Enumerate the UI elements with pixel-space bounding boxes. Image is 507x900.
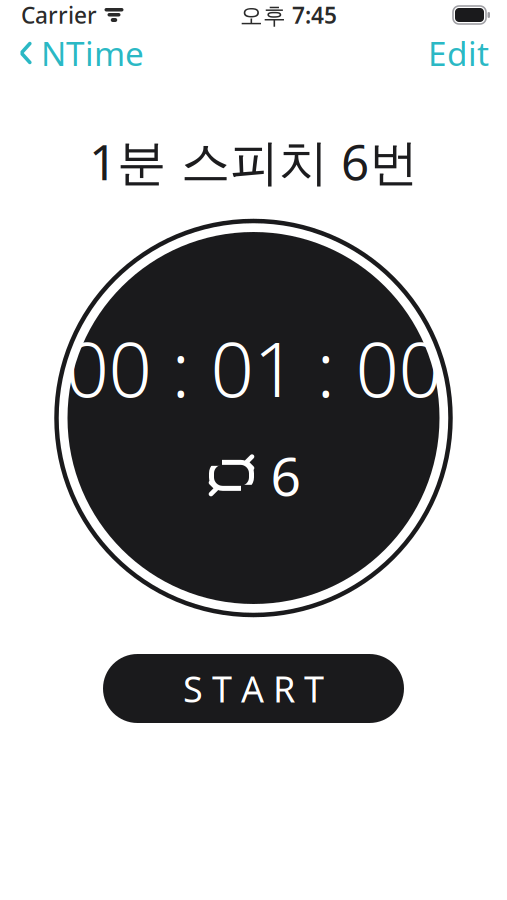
button[interactable]: S T A R T [103, 654, 404, 723]
staticText: Carrier [21, 0, 97, 30]
staticText: NTime [41, 31, 144, 75]
staticText: Edit [428, 31, 489, 75]
staticText: 6 [270, 440, 301, 511]
staticText: 오후 7:45 [240, 0, 337, 30]
staticText: S T A R T [183, 665, 324, 712]
button[interactable]: Edit [410, 30, 507, 76]
staticText: 00 : 01 : 00 [65, 317, 441, 418]
button[interactable]: NTime [0, 30, 156, 76]
staticText: 1분 스피치 6번 [89, 128, 418, 194]
